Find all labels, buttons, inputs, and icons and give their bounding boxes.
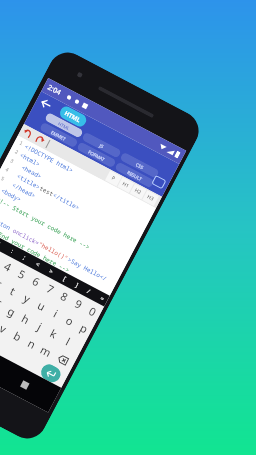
button[interactable]: 5 — [10, 262, 33, 286]
button[interactable]: Console — [150, 173, 168, 191]
staticText: < — [34, 260, 42, 269]
staticText: <html> — [18, 151, 41, 168]
button[interactable]: Undo — [20, 126, 35, 141]
staticText: p — [78, 320, 91, 336]
staticText: [ — [62, 275, 67, 283]
button[interactable]: p — [72, 316, 95, 340]
button[interactable]: CSS — [119, 152, 160, 179]
button[interactable]: 9 — [67, 291, 90, 316]
staticText: EMMET — [50, 129, 67, 142]
staticText: 5 — [0, 175, 6, 186]
staticText: > — [47, 267, 55, 276]
button[interactable]: g — [0, 299, 23, 323]
staticText: 9 — [72, 296, 85, 312]
button[interactable]: v — [0, 316, 15, 341]
button[interactable]: 4 — [0, 255, 19, 278]
button[interactable]: b — [6, 324, 29, 348]
staticText: 6 — [30, 273, 43, 290]
button[interactable]: 8 — [53, 284, 76, 308]
staticText: <head> — [14, 160, 43, 181]
staticText: i — [51, 306, 61, 321]
button[interactable]: JS — [81, 132, 122, 159]
button[interactable]: 0 — [81, 299, 104, 323]
staticText: JS — [99, 142, 105, 149]
button[interactable]: Backspace — [48, 346, 77, 374]
staticText: m — [38, 342, 54, 360]
button[interactable]: HTML — [58, 104, 88, 129]
button[interactable]: 3 — [0, 248, 6, 271]
staticText: CSS — [135, 161, 145, 170]
button[interactable]: RESULT — [114, 161, 155, 188]
staticText: "hello()" — [37, 240, 70, 263]
staticText: </head> — [4, 178, 37, 200]
staticText: H1 — [121, 180, 130, 190]
staticText: >Say Hello</button> — [66, 256, 118, 288]
button[interactable]: 7 — [39, 277, 62, 301]
staticText: t — [8, 283, 18, 298]
staticText: ; — [22, 254, 27, 262]
staticText: h — [19, 311, 32, 327]
button[interactable]: n — [20, 331, 43, 355]
staticText: 8 — [58, 288, 71, 305]
button[interactable]: r — [0, 271, 10, 295]
button[interactable]: H1 — [117, 177, 134, 193]
staticText: 0 — [86, 303, 100, 320]
button[interactable]: k — [42, 321, 65, 346]
button[interactable]: i — [44, 301, 67, 325]
staticText: <title> — [9, 169, 42, 191]
staticText: v — [0, 320, 9, 336]
staticText: = — [99, 294, 106, 303]
button[interactable]: H3 — [142, 190, 159, 206]
button[interactable]: f — [0, 292, 9, 316]
staticText: 7 — [44, 281, 57, 297]
button[interactable]: l — [56, 329, 79, 353]
staticText: f — [0, 297, 3, 312]
staticText: k — [47, 325, 60, 342]
button[interactable]: c — [0, 309, 1, 333]
button[interactable]: y — [16, 286, 39, 310]
button[interactable]: m — [34, 339, 57, 363]
staticText: FORMAT — [87, 149, 106, 162]
staticText: H3 — [146, 193, 155, 203]
button[interactable]: Back — [35, 93, 56, 113]
staticText: 4 — [3, 166, 11, 177]
staticText: HTML — [63, 109, 83, 125]
staticText: </title> — [51, 191, 81, 212]
staticText: P — [110, 175, 117, 183]
staticText: : — [9, 247, 15, 255]
button[interactable]: P — [105, 171, 122, 186]
staticText: RESULT — [126, 169, 143, 182]
staticText: r — [0, 276, 5, 291]
staticText: y — [21, 290, 33, 306]
staticText: / — [86, 287, 92, 296]
button[interactable]: h — [14, 306, 37, 331]
button[interactable]: HTML — [44, 112, 84, 139]
button[interactable]: u — [30, 293, 53, 318]
button[interactable]: EMMET — [39, 122, 79, 148]
staticText: 2 — [12, 148, 20, 159]
staticText: l — [63, 334, 73, 349]
staticText: 3 — [0, 251, 1, 268]
button[interactable]: H2 — [130, 184, 146, 199]
button[interactable]: t — [1, 278, 24, 303]
button[interactable]: j — [28, 314, 51, 338]
staticText: <button — [0, 213, 15, 234]
button[interactable]: FORMAT — [76, 141, 117, 168]
staticText: HTML — [57, 120, 71, 132]
button[interactable]: Enter — [38, 361, 63, 385]
staticText: <!DOCTYPE html> — [23, 142, 75, 175]
staticText: 3 — [7, 157, 16, 168]
staticText: b — [11, 328, 24, 344]
staticText: } — [0, 240, 3, 249]
button[interactable]: Recents — [12, 372, 37, 396]
button[interactable]: Redo — [32, 132, 47, 147]
staticText: g — [5, 303, 18, 320]
staticText: <!-- Start your code here --> — [0, 195, 92, 251]
button[interactable]: o — [58, 308, 81, 333]
button[interactable]: 6 — [24, 269, 47, 293]
staticText: n — [25, 335, 39, 352]
staticText: 4 — [1, 258, 15, 275]
staticText: onclick= — [11, 227, 41, 247]
staticText: u — [35, 297, 48, 314]
